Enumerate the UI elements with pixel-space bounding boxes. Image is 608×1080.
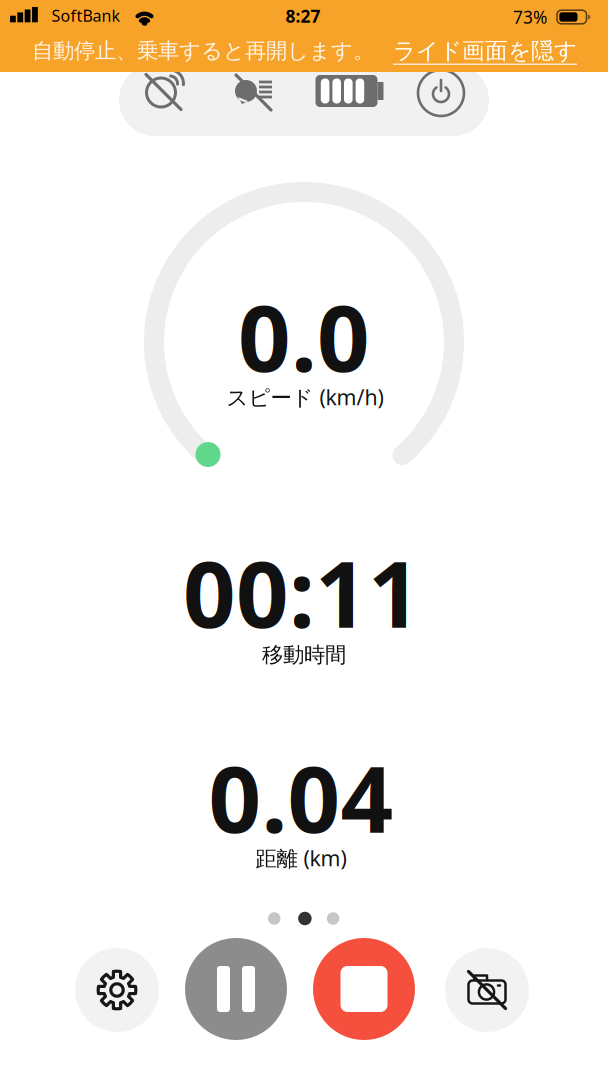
staticText: 移動時間 xyxy=(262,642,346,668)
button[interactable]: Power xyxy=(417,69,465,117)
staticText: 00:11 xyxy=(183,531,421,653)
staticText: 0.0 xyxy=(238,275,370,397)
staticText: 8:27 xyxy=(285,4,320,27)
staticText: 73% xyxy=(513,5,547,28)
staticText: スピード (km/h) xyxy=(226,383,383,411)
button[interactable]: Stop xyxy=(313,938,415,1040)
staticText: ライド画面を隠す xyxy=(393,37,577,65)
staticText: 0.04 xyxy=(208,736,393,858)
button[interactable]: ライド画面を隠す xyxy=(393,37,577,65)
staticText: 自動停止、乗車すると再開します。 xyxy=(32,38,374,64)
button[interactable]: Settings xyxy=(75,948,159,1032)
button[interactable]: Voice guidance off xyxy=(230,70,276,116)
button[interactable]: Pause xyxy=(185,938,287,1040)
button[interactable]: Camera off xyxy=(445,948,529,1032)
staticText: SoftBank xyxy=(51,5,120,26)
staticText: 距離 (km) xyxy=(255,844,346,872)
button[interactable]: GPS off xyxy=(142,67,186,115)
